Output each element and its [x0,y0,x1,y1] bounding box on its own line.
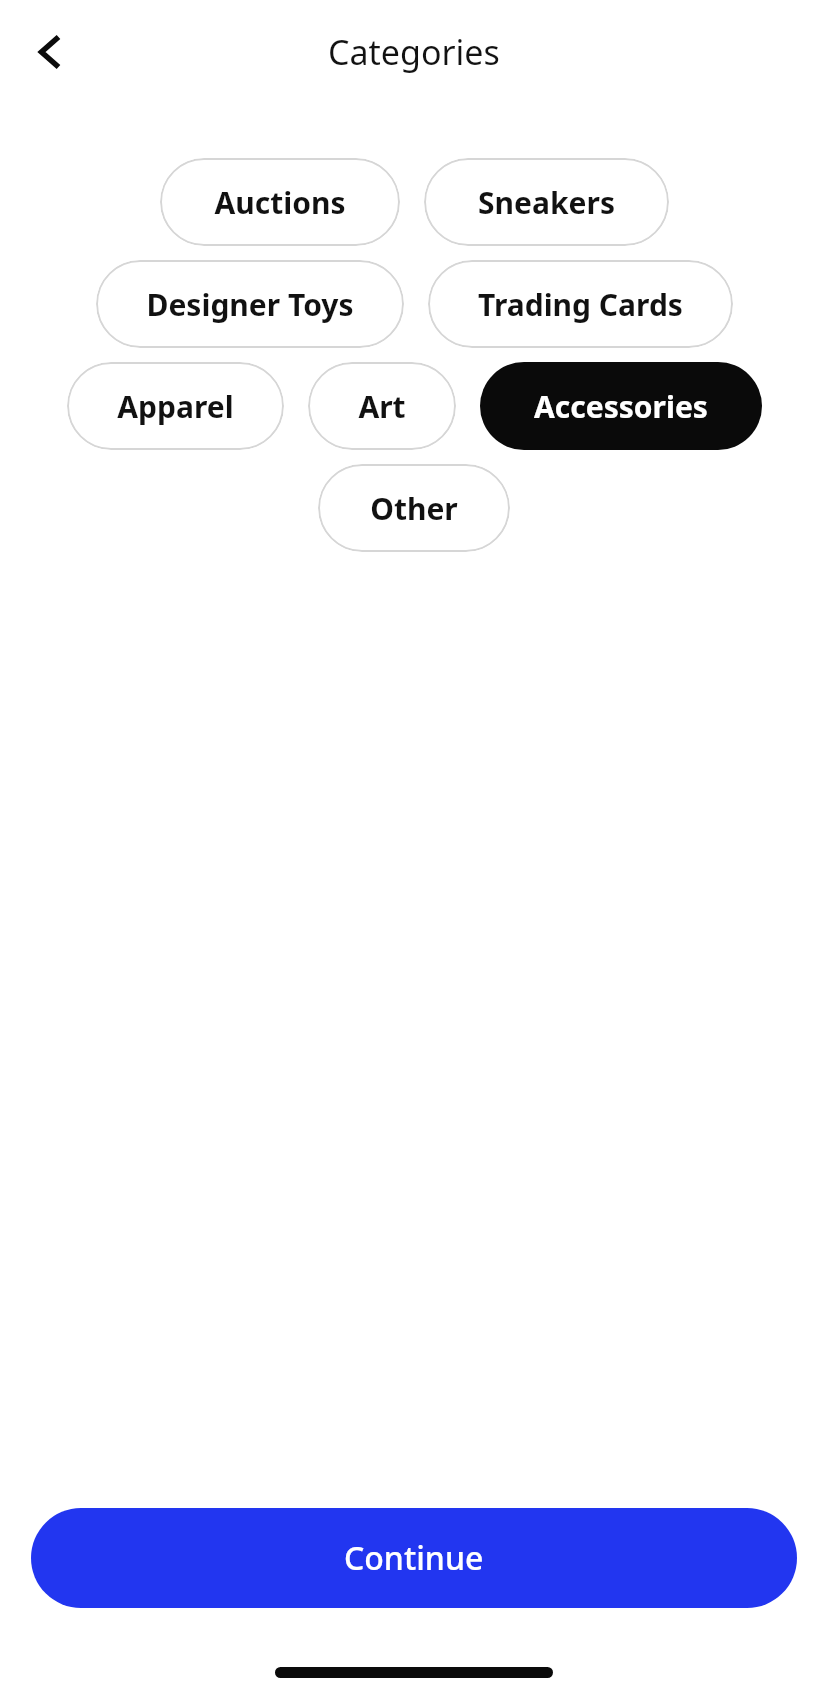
staticText: Auctions [214,182,346,223]
staticText: Apparel [117,386,234,427]
button[interactable]: Back [20,21,82,83]
staticText: Trading Cards [478,284,683,325]
staticText: Designer Toys [146,284,354,325]
button[interactable]: Continue [31,1508,797,1608]
button[interactable]: Auctions [160,158,400,246]
button[interactable]: Designer Toys [96,260,404,348]
button[interactable]: Trading Cards [428,260,733,348]
staticText: Continue [344,1536,484,1580]
button[interactable]: Apparel [67,362,284,450]
staticText: Accessories [534,386,708,427]
button[interactable]: Other [318,464,510,552]
staticText: Art [358,386,406,427]
button[interactable]: Accessories [480,362,762,450]
button[interactable]: Art [308,362,456,450]
staticText: Other [370,488,458,529]
staticText: Categories [328,29,500,75]
button[interactable]: Sneakers [424,158,669,246]
staticText: Sneakers [478,182,615,223]
